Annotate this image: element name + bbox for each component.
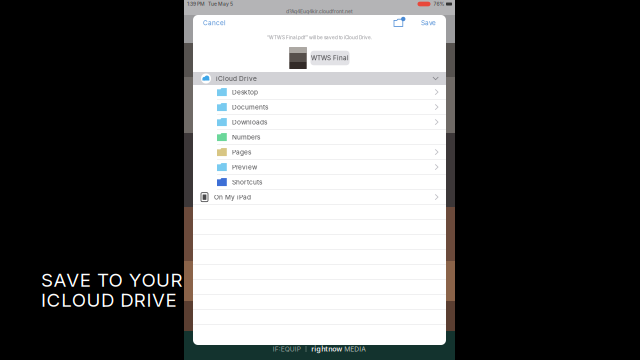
staticText: Downloads <box>232 118 267 126</box>
button[interactable]: Preview <box>193 160 446 175</box>
button[interactable]: Save <box>417 17 440 29</box>
staticText: 1:39 PM <box>187 1 205 7</box>
button[interactable]: Numbers <box>193 130 446 145</box>
staticText: ICLOUD DRIVE <box>41 289 177 311</box>
button[interactable]: New Folder <box>390 16 408 30</box>
button[interactable]: Pages <box>193 145 446 160</box>
button[interactable]: Downloads <box>193 115 446 130</box>
staticText: Save <box>421 19 436 27</box>
staticText: Pages <box>232 148 251 156</box>
button[interactable]: Shortcuts <box>193 175 446 190</box>
staticText: SAVE TO YOUR <box>41 269 183 291</box>
staticText: Desktop <box>232 88 258 96</box>
staticText: rightnow <box>311 345 342 353</box>
staticText: MEDIA <box>344 345 366 353</box>
staticText: WTWS Final <box>311 54 349 62</box>
staticText: On My iPad <box>214 193 251 201</box>
button[interactable]: iCloud Drive <box>193 72 446 85</box>
button[interactable]: Cancel <box>199 17 230 29</box>
staticText: “WTWS Final.pdf” will be saved to iCloud… <box>267 35 372 40</box>
staticText: Documents <box>232 103 268 111</box>
staticText: Cancel <box>203 19 226 27</box>
staticText: 76% <box>433 1 444 7</box>
button[interactable]: Documents <box>193 100 446 115</box>
staticText: d?Aq4Euq4kir.cloudfront.net <box>286 8 353 14</box>
staticText: iCloud Drive <box>216 74 257 82</box>
staticText: IF:EQUIP <box>273 345 301 353</box>
staticText: Numbers <box>232 133 260 141</box>
button[interactable]: On My iPad <box>193 190 446 205</box>
staticText: Tue May 5 <box>208 1 233 7</box>
button[interactable]: Desktop <box>193 85 446 100</box>
staticText: Shortcuts <box>232 178 262 186</box>
staticText: Preview <box>232 163 257 171</box>
